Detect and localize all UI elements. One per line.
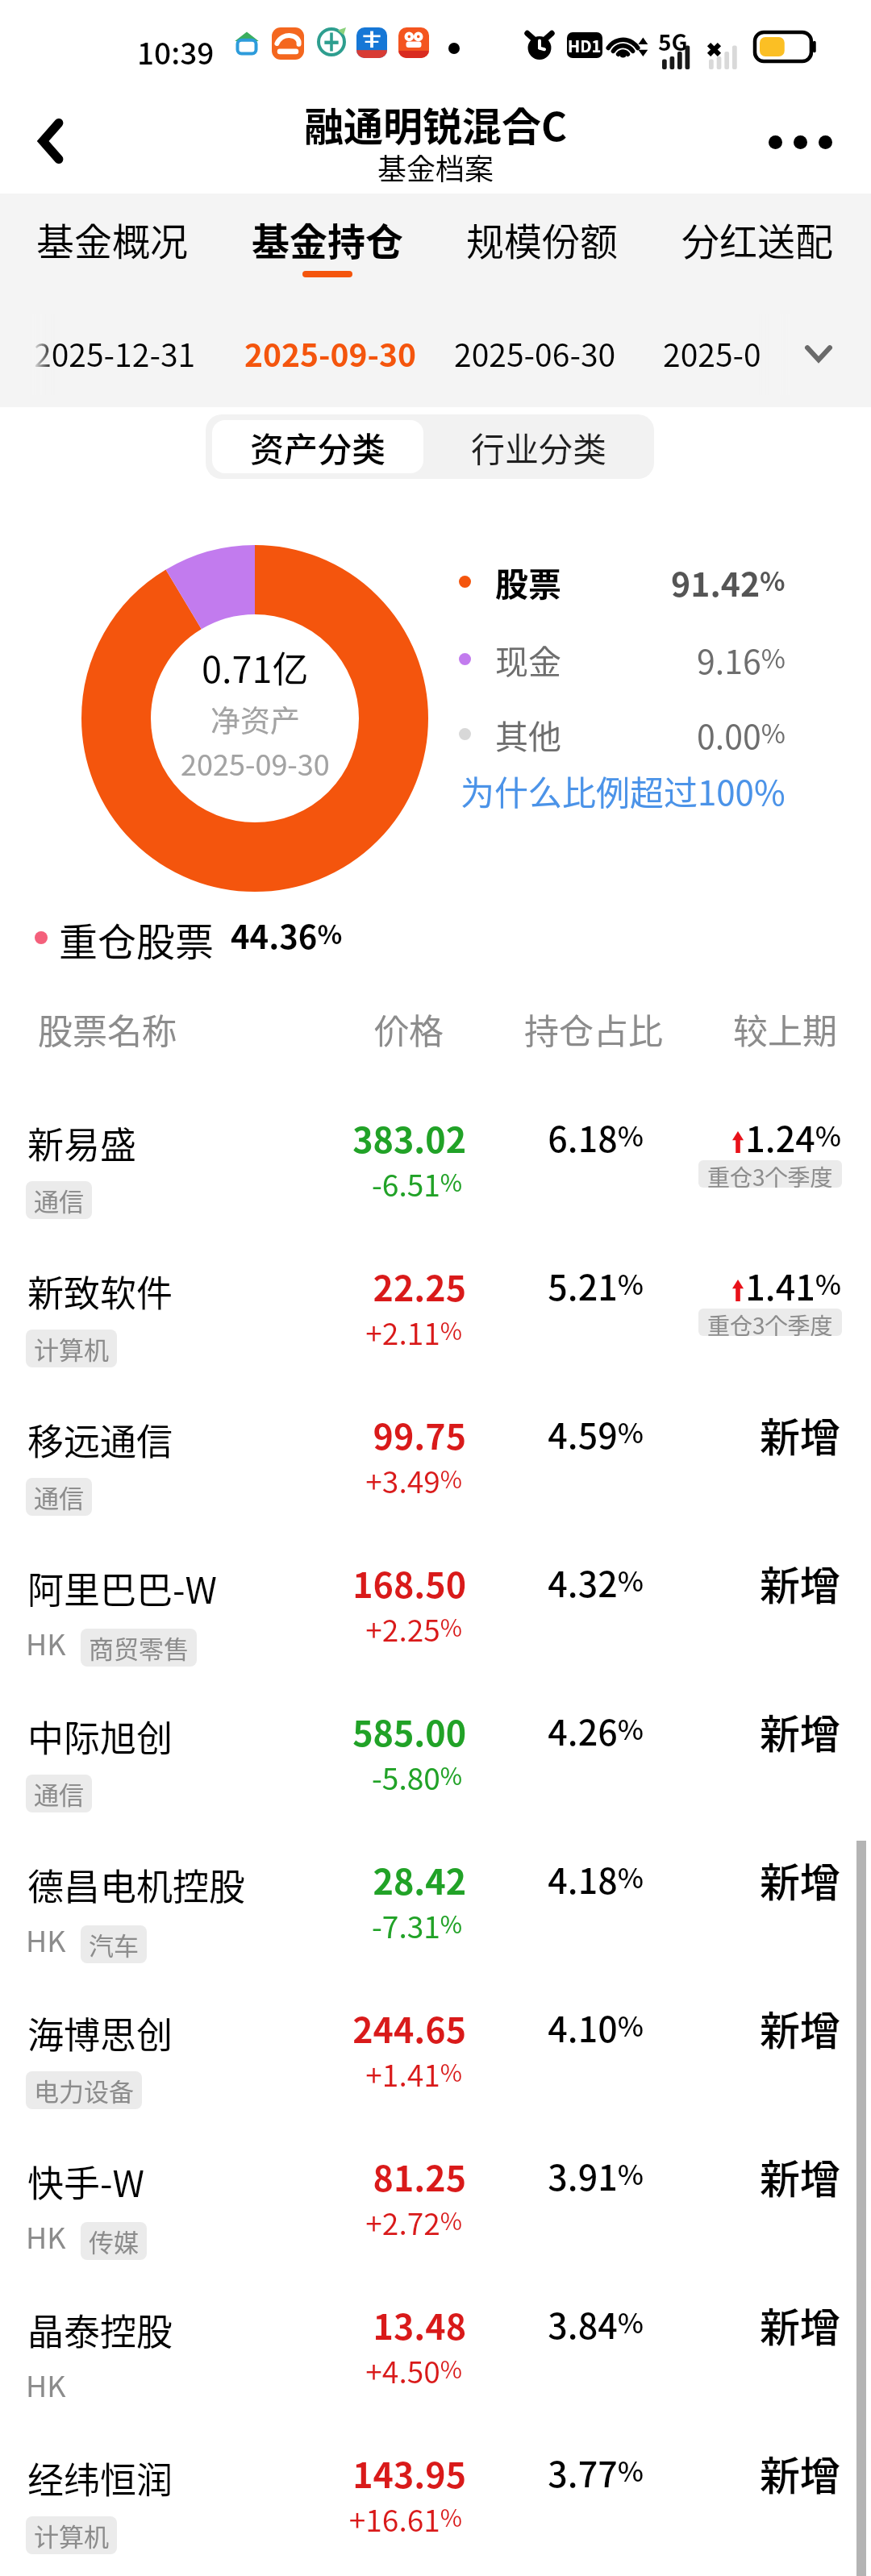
staticText: 商贸零售 xyxy=(89,1629,189,1666)
button[interactable]: 基金概况 xyxy=(11,211,213,285)
staticText: -7.31% xyxy=(372,1904,462,1947)
staticText: 基金持仓 xyxy=(252,211,403,266)
staticText: 2025-09-30 xyxy=(181,742,330,784)
button[interactable]: 中际旭创 xyxy=(0,1709,871,1858)
button[interactable]: 新易盛 xyxy=(0,1116,871,1264)
staticText: 传媒 xyxy=(89,2223,139,2259)
button[interactable]: 移远通信 xyxy=(0,1413,871,1561)
button[interactable]: More options xyxy=(758,113,842,171)
button[interactable]: 现金 xyxy=(452,631,794,686)
staticText: 585.00 xyxy=(352,1706,466,1756)
staticText: 通信 xyxy=(34,1182,84,1218)
staticText: 通信 xyxy=(34,1775,84,1812)
button[interactable]: 行业分类 xyxy=(430,420,648,473)
staticText: 德昌电机控股 xyxy=(27,1858,246,1911)
button[interactable]: 阿里巴巴-W xyxy=(0,1561,871,1709)
staticText: 计算机 xyxy=(34,2517,109,2553)
staticText: +2.11% xyxy=(365,1310,462,1354)
staticText: 2025-12-31 xyxy=(34,331,196,376)
staticText: 10:39 xyxy=(137,30,215,73)
staticText: 重仓3个季度 xyxy=(707,1160,833,1188)
staticText: 2025-09-30 xyxy=(244,331,416,376)
staticText: +1.41% xyxy=(365,2052,462,2095)
staticText: 较上期 xyxy=(733,1004,837,1054)
button[interactable]: 晶泰控股 xyxy=(0,2303,871,2451)
staticText: 价格 xyxy=(374,1004,444,1054)
staticText: 28.42 xyxy=(373,1854,466,1904)
staticText: 244.65 xyxy=(352,2003,466,2053)
staticText: 中际旭创 xyxy=(27,1710,173,1762)
staticText: 阿里巴巴-W xyxy=(27,1562,218,1614)
staticText: 新增 xyxy=(760,1405,840,1463)
staticText: 1.24% xyxy=(745,1112,841,1162)
staticText: 为什么比例超过100% xyxy=(461,766,786,815)
button[interactable]: 资产分类 xyxy=(212,420,423,473)
button[interactable]: 快手-W xyxy=(0,2154,871,2303)
staticText: HK xyxy=(26,2363,66,2405)
staticText: 新增 xyxy=(760,2147,840,2205)
staticText: 分红送配 xyxy=(681,211,833,266)
button[interactable]: 2025-09-30 xyxy=(244,331,416,376)
button[interactable]: 股票 xyxy=(452,554,794,609)
button[interactable]: 经纬恒润 xyxy=(0,2451,871,2576)
staticText: 资产分类 xyxy=(250,422,386,472)
staticText: 168.50 xyxy=(352,1558,466,1608)
staticText: 5.21% xyxy=(548,1260,644,1310)
button[interactable]: 规模份额 xyxy=(441,211,643,285)
staticText: 3.77% xyxy=(548,2447,644,2497)
button[interactable]: 新致软件 xyxy=(0,1264,871,1413)
staticText: -6.51% xyxy=(372,1162,462,1205)
button[interactable]: 基金持仓 xyxy=(227,211,428,285)
staticText: 汽车 xyxy=(89,1926,139,1962)
button[interactable]: 分红送配 xyxy=(656,211,858,285)
staticText: 4.59% xyxy=(548,1409,644,1459)
button[interactable]: 2025-0 xyxy=(663,331,761,376)
staticText: +16.61% xyxy=(348,2497,462,2541)
staticText: +4.50% xyxy=(365,2349,462,2392)
staticText: HK xyxy=(26,2215,66,2257)
staticText: 新易盛 xyxy=(27,1117,137,1169)
button[interactable]: 其他 xyxy=(452,706,794,761)
staticText: +3.49% xyxy=(365,1459,462,1502)
staticText: 新增 xyxy=(760,2295,840,2353)
staticText: 移远通信 xyxy=(27,1413,173,1466)
staticText: 新致软件 xyxy=(27,1265,173,1317)
button[interactable]: 2025-06-30 xyxy=(454,331,616,376)
button[interactable]: 2025-12-31 xyxy=(34,331,196,376)
staticText: 4.10% xyxy=(548,2002,644,2052)
staticText: 新增 xyxy=(760,1999,840,2057)
button[interactable]: 为什么比例超过100% xyxy=(461,766,786,815)
staticText: 22.25 xyxy=(373,1261,466,1311)
staticText: 1.41% xyxy=(745,1260,841,1310)
staticText: 净资产 xyxy=(210,697,300,741)
staticText: 电力设备 xyxy=(34,2072,134,2108)
staticText: 通信 xyxy=(34,1479,84,1515)
staticText: 其他 xyxy=(495,710,561,758)
staticText: 383.02 xyxy=(352,1113,466,1163)
button[interactable]: Back xyxy=(15,105,87,177)
staticText: 快手-W xyxy=(27,2155,145,2208)
staticText: 44.36% xyxy=(231,912,343,959)
staticText: 91.42% xyxy=(671,558,786,606)
staticText: 经纬恒润 xyxy=(27,2452,173,2504)
staticText: 4.32% xyxy=(548,1557,644,1607)
staticText: 2025-06-30 xyxy=(454,331,616,376)
staticText: 融通明锐混合C xyxy=(304,95,568,152)
staticText: 规模份额 xyxy=(466,211,618,266)
staticText: 基金概况 xyxy=(36,211,188,266)
staticText: 新增 xyxy=(760,1702,840,1760)
staticText: 股票名称 xyxy=(38,1004,177,1054)
button[interactable]: Expand dates xyxy=(786,324,851,382)
button[interactable]: 德昌电机控股 xyxy=(0,1858,871,2006)
staticText: 重仓股票 xyxy=(59,911,215,968)
staticText: 81.25 xyxy=(373,2151,466,2201)
staticText: -5.80% xyxy=(372,1755,462,1799)
button[interactable]: 海博思创 xyxy=(0,2006,871,2154)
staticText: +2.25% xyxy=(365,1607,462,1650)
staticText: 海博思创 xyxy=(27,2007,173,2059)
staticText: 晶泰控股 xyxy=(27,2303,173,2356)
staticText: 重仓3个季度 xyxy=(707,1309,833,1336)
staticText: 0.71亿 xyxy=(202,641,309,693)
staticText: 现金 xyxy=(495,635,561,683)
staticText: 4.26% xyxy=(548,1705,644,1755)
